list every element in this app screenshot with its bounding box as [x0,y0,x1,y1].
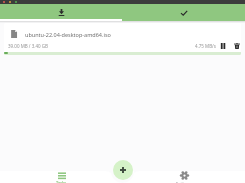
button[interactable]: Add download [113,160,133,180]
button[interactable]: Downloading tab [0,4,122,21]
button[interactable]: Pause [218,41,227,50]
staticText: Tasks [56,180,67,183]
button[interactable]: Tasks [0,165,122,183]
staticText: Settings [176,181,192,183]
staticText: 4.75 MB/s [195,43,216,49]
staticText: ubuntu-22.04-desktop-amd64.iso [25,31,111,38]
button[interactable]: Settings [122,165,245,183]
button[interactable]: ubuntu-22.04-desktop-amd64.iso [4,23,241,55]
button[interactable]: Delete [232,41,241,50]
button[interactable]: Completed tab [122,4,245,21]
staticText: 39.00 MB / 3.40 GB [8,43,48,49]
